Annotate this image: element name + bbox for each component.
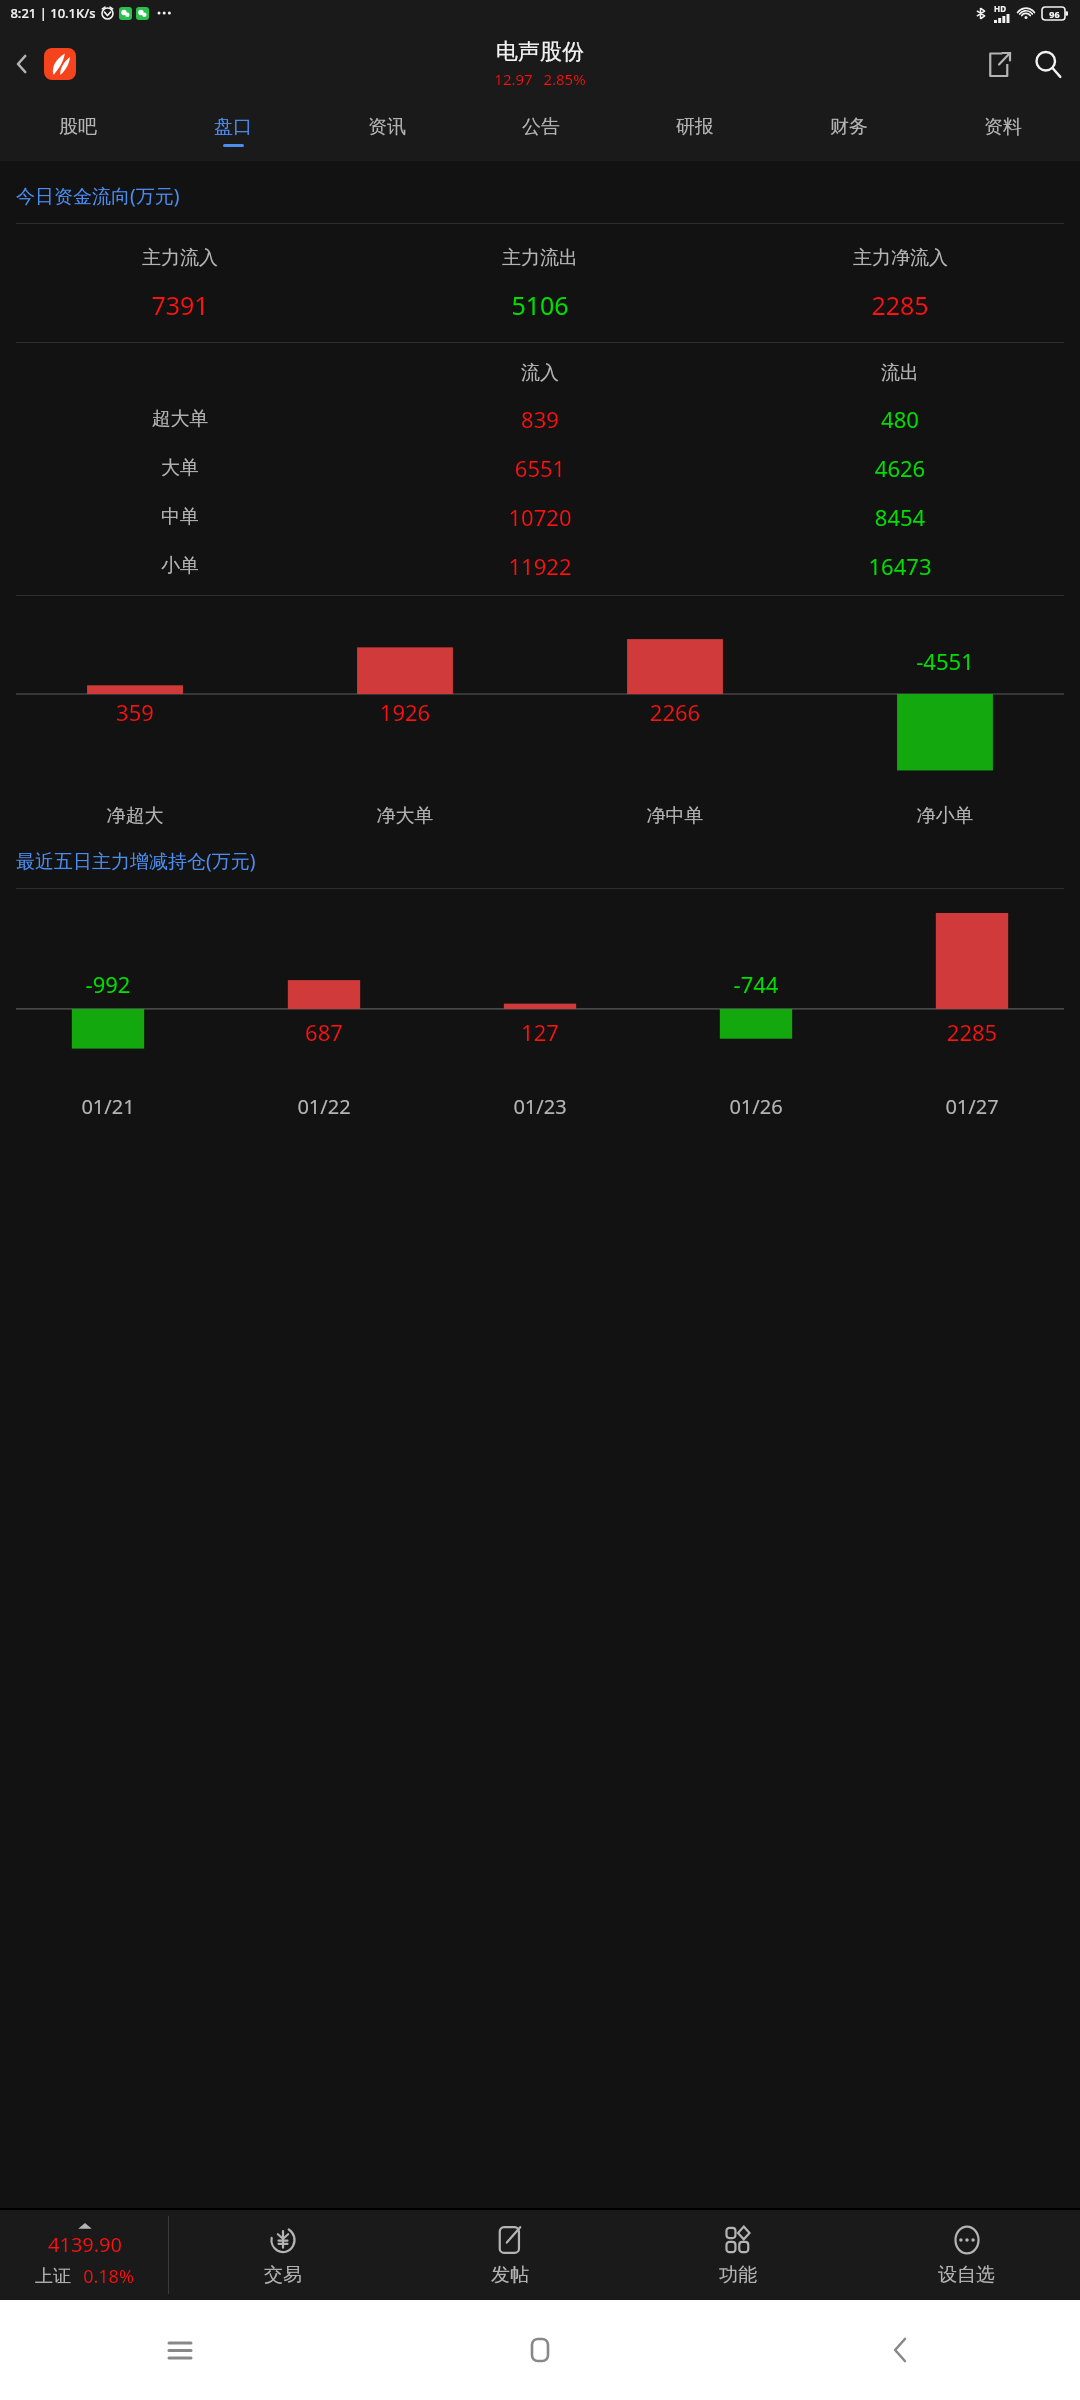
staticText: 设自选 bbox=[938, 2263, 995, 2287]
staticText: 2.85% bbox=[543, 69, 586, 89]
button[interactable]: 盘口 bbox=[155, 101, 310, 161]
staticText: -4551 bbox=[810, 646, 1080, 676]
staticText: 480 bbox=[720, 404, 1080, 434]
staticText: 净小单 bbox=[810, 804, 1080, 828]
button[interactable]: 研报 bbox=[618, 101, 772, 161]
staticText: 10720 bbox=[360, 502, 720, 532]
button[interactable]: 交易 bbox=[169, 2210, 396, 2300]
staticText: 功能 bbox=[719, 2263, 757, 2287]
staticText: 盘口 bbox=[214, 115, 252, 139]
staticText: 687 bbox=[216, 1017, 432, 1047]
button[interactable]: Home bbox=[360, 2300, 720, 2400]
button[interactable]: App icon bbox=[44, 48, 76, 80]
button[interactable]: 设自选 bbox=[852, 2210, 1080, 2300]
button[interactable]: 功能 bbox=[624, 2210, 852, 2300]
staticText: 839 bbox=[360, 404, 720, 434]
staticText: 最近五日主力增减持仓(万元) bbox=[16, 848, 1080, 874]
staticText: 资料 bbox=[984, 115, 1022, 139]
staticText: HD bbox=[994, 3, 1006, 14]
staticText: 4626 bbox=[720, 453, 1080, 483]
staticText: 6551 bbox=[360, 453, 720, 483]
staticText: 交易 bbox=[264, 2263, 302, 2287]
staticText: 股吧 bbox=[59, 115, 97, 139]
staticText: 净中单 bbox=[540, 804, 810, 828]
staticText: 中单 bbox=[0, 505, 360, 529]
staticText: 2266 bbox=[540, 697, 810, 727]
staticText: 发帖 bbox=[491, 2263, 529, 2287]
staticText: 主力流入 bbox=[142, 246, 218, 270]
staticText: -744 bbox=[648, 969, 864, 999]
staticText: 大单 bbox=[0, 456, 360, 480]
staticText: 96 bbox=[1049, 8, 1060, 20]
staticText: 16473 bbox=[720, 551, 1080, 581]
staticText: 4139.90 bbox=[48, 2231, 122, 2258]
staticText: 上证 bbox=[35, 2265, 71, 2288]
staticText: 净超大 bbox=[0, 804, 270, 828]
staticText: 7391 bbox=[151, 288, 209, 322]
staticText: 0.18% bbox=[83, 2264, 134, 2289]
staticText: 财务 bbox=[830, 115, 868, 139]
staticText: 01/23 bbox=[432, 1093, 648, 1120]
button[interactable]: 公告 bbox=[464, 101, 618, 161]
staticText: 127 bbox=[432, 1017, 648, 1047]
button[interactable]: 发帖 bbox=[396, 2210, 624, 2300]
button[interactable]: 财务 bbox=[772, 101, 926, 161]
button[interactable]: Share bbox=[974, 40, 1022, 88]
staticText: 主力净流入 bbox=[853, 246, 948, 270]
staticText: 主力流出 bbox=[502, 246, 578, 270]
staticText: 2285 bbox=[864, 1017, 1080, 1047]
staticText: -992 bbox=[0, 969, 216, 999]
staticText: 11922 bbox=[360, 551, 720, 581]
staticText: 01/27 bbox=[864, 1093, 1080, 1120]
staticText: 2285 bbox=[871, 288, 929, 322]
button[interactable]: Search bbox=[1022, 38, 1074, 90]
staticText: 小单 bbox=[0, 554, 360, 578]
button[interactable]: 资料 bbox=[926, 101, 1080, 161]
staticText: 12.97 bbox=[494, 69, 533, 89]
button[interactable]: Back bbox=[0, 42, 44, 86]
staticText: 5106 bbox=[511, 288, 569, 322]
button[interactable]: Recents bbox=[0, 2300, 360, 2400]
staticText: 资讯 bbox=[368, 115, 406, 139]
staticText: 1926 bbox=[270, 697, 540, 727]
staticText: 8454 bbox=[720, 502, 1080, 532]
button[interactable]: 股吧 bbox=[0, 101, 155, 161]
button[interactable]: 资讯 bbox=[310, 101, 464, 161]
staticText: 01/22 bbox=[216, 1093, 432, 1120]
staticText: 359 bbox=[0, 697, 270, 727]
staticText: 今日资金流向(万元) bbox=[16, 183, 1080, 209]
staticText: 净大单 bbox=[270, 804, 540, 828]
staticText: 电声股份 bbox=[496, 38, 584, 66]
staticText: 01/26 bbox=[648, 1093, 864, 1120]
staticText: 01/21 bbox=[0, 1093, 216, 1120]
staticText: 研报 bbox=[676, 115, 714, 139]
staticText: 公告 bbox=[522, 115, 560, 139]
staticText: 8:21 | 10.1K/s bbox=[10, 4, 96, 22]
staticText: 流出 bbox=[720, 361, 1080, 385]
staticText: 超大单 bbox=[0, 407, 360, 431]
button[interactable]: 4139.90 bbox=[0, 2210, 168, 2300]
button[interactable]: Back bbox=[720, 2300, 1080, 2400]
staticText: 流入 bbox=[360, 361, 720, 385]
